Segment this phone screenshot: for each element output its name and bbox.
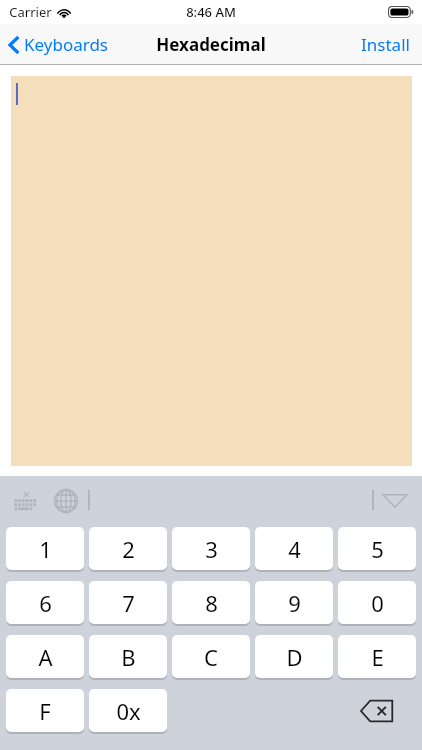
button[interactable]: Install — [349, 25, 422, 64]
button[interactable]: Collapse — [374, 485, 416, 516]
staticText: D — [286, 642, 303, 672]
staticText: 8 — [205, 588, 218, 618]
button[interactable]: Backspace — [338, 689, 416, 733]
button[interactable]: 6 — [6, 581, 84, 624]
staticText: Keyboards — [24, 33, 108, 56]
button[interactable]: C — [172, 635, 250, 678]
button[interactable]: 3 — [172, 527, 250, 570]
staticText: 0 — [371, 588, 384, 618]
button[interactable]: D — [255, 635, 333, 678]
staticText: 8:46 AM — [186, 3, 236, 21]
staticText: B — [121, 642, 136, 672]
staticText: Install — [361, 33, 410, 56]
button[interactable]: Keyboards — [0, 27, 118, 62]
button[interactable]: Next keyboard — [47, 482, 85, 520]
button[interactable]: 5 — [338, 527, 416, 570]
staticText: 4 — [288, 534, 301, 564]
button[interactable]: 7 — [89, 581, 167, 624]
button[interactable]: 4 — [255, 527, 333, 570]
button[interactable]: A — [6, 635, 84, 678]
button[interactable]: F — [6, 689, 84, 732]
button[interactable]: 1 — [6, 527, 84, 570]
button[interactable]: 9 — [255, 581, 333, 624]
button[interactable]: 0x — [89, 689, 167, 732]
staticText: 0x — [116, 696, 141, 726]
staticText: C — [204, 642, 218, 672]
staticText: E — [371, 642, 384, 672]
staticText: 2 — [122, 534, 135, 564]
button[interactable]: 0 — [338, 581, 416, 624]
staticText: F — [39, 696, 51, 726]
staticText: Hexadecimal — [156, 33, 266, 56]
staticText: 7 — [122, 588, 135, 618]
staticText: 1 — [39, 534, 52, 564]
staticText: 6 — [39, 588, 52, 618]
button[interactable]: 2 — [89, 527, 167, 570]
button[interactable]: Hide keyboard — [6, 482, 46, 520]
staticText: 9 — [288, 588, 301, 618]
button[interactable]: B — [89, 635, 167, 678]
staticText: 3 — [205, 534, 218, 564]
button[interactable]: E — [338, 635, 416, 678]
staticText: 5 — [371, 534, 384, 564]
staticText: Carrier — [9, 3, 52, 21]
button[interactable]: 8 — [172, 581, 250, 624]
staticText: A — [38, 642, 53, 672]
